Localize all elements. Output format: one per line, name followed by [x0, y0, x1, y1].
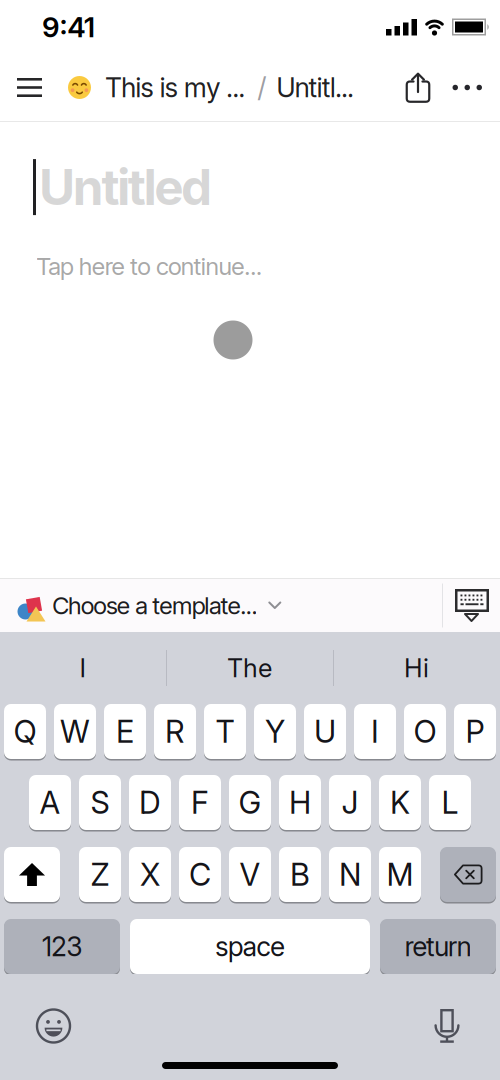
button[interactable]: Emoji [0, 1009, 70, 1042]
button[interactable]: More options [452, 85, 500, 90]
button[interactable]: X [129, 847, 171, 902]
staticText: H [289, 784, 311, 821]
staticText: This is my ... [105, 72, 245, 103]
button[interactable]: Shift [4, 847, 60, 902]
button[interactable]: return [380, 919, 496, 974]
staticText: M [386, 856, 413, 893]
button[interactable]: Q [4, 704, 46, 759]
staticText: D [139, 784, 161, 821]
button[interactable]: V [229, 847, 271, 902]
staticText: / [257, 72, 266, 103]
staticText: R [165, 713, 185, 750]
button[interactable]: C [179, 847, 221, 902]
staticText: T [215, 713, 234, 750]
button[interactable]: K [379, 775, 421, 830]
staticText: Untitled [39, 158, 212, 216]
button[interactable]: J [329, 775, 371, 830]
staticText: U [314, 713, 336, 750]
button[interactable]: This is my ... [68, 72, 245, 103]
staticText: 123 [42, 931, 82, 962]
staticText: P [465, 713, 484, 750]
staticText: X [140, 856, 160, 893]
staticText: S [90, 784, 109, 821]
button[interactable]: Share [405, 72, 452, 103]
staticText: I [371, 713, 379, 750]
button[interactable]: L [429, 775, 471, 830]
staticText: Hi [404, 653, 429, 683]
staticText: K [390, 784, 410, 821]
staticText: A [39, 784, 60, 821]
staticText: O [413, 713, 436, 750]
staticText: 9:41 [42, 10, 95, 43]
button[interactable]: The [166, 632, 333, 704]
button[interactable]: Dismiss keyboard [443, 587, 500, 623]
button[interactable]: N [329, 847, 371, 902]
staticText: Q [13, 713, 36, 750]
button[interactable]: T [204, 704, 246, 759]
staticText: Z [90, 856, 109, 893]
button[interactable]: O [404, 704, 446, 759]
staticText: Y [265, 713, 285, 750]
button[interactable]: I [354, 704, 396, 759]
button[interactable]: A [29, 775, 71, 830]
button[interactable]: Untitl... [276, 72, 354, 103]
staticText: Tap here to continue... [36, 252, 263, 280]
button[interactable]: I [0, 632, 166, 704]
staticText: V [239, 856, 260, 893]
button[interactable]: R [154, 704, 196, 759]
button[interactable]: Y [254, 704, 296, 759]
button[interactable]: S [79, 775, 121, 830]
button[interactable]: Z [79, 847, 121, 902]
button[interactable]: 123 [4, 919, 120, 974]
button[interactable]: Sidebar menu [0, 78, 68, 97]
button[interactable]: E [104, 704, 146, 759]
button[interactable]: D [129, 775, 171, 830]
button[interactable]: U [304, 704, 346, 759]
staticText: Untitl... [276, 72, 354, 103]
button[interactable]: Delete [440, 847, 496, 902]
staticText: Choose a template... [52, 591, 258, 620]
button[interactable]: Dictation [431, 1009, 500, 1043]
staticText: G [238, 784, 261, 821]
button[interactable]: Tap here to continue... [36, 252, 263, 280]
button[interactable]: W [54, 704, 96, 759]
button[interactable]: P [454, 704, 496, 759]
staticText: W [60, 713, 90, 750]
button[interactable]: M [379, 847, 421, 902]
staticText: F [191, 784, 209, 821]
button[interactable]: Hi [333, 632, 500, 704]
staticText: I [79, 653, 86, 683]
staticText: C [189, 856, 211, 893]
staticText: The [227, 653, 272, 683]
button[interactable]: Choose a template... [0, 591, 280, 620]
staticText: space [215, 931, 285, 962]
staticText: N [339, 856, 361, 893]
staticText: return [404, 931, 471, 962]
staticText: L [441, 784, 458, 821]
staticText: B [290, 856, 310, 893]
button[interactable]: B [279, 847, 321, 902]
staticText: E [116, 713, 134, 750]
button[interactable]: H [279, 775, 321, 830]
staticText: J [341, 784, 358, 821]
button[interactable]: F [179, 775, 221, 830]
button[interactable]: space [130, 919, 370, 974]
button[interactable]: G [229, 775, 271, 830]
